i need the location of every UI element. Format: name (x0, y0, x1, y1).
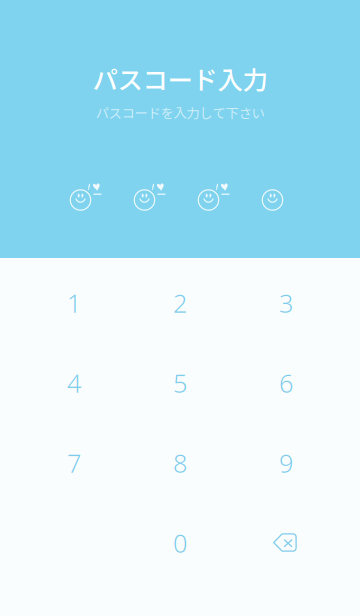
button[interactable]: 1 (21, 263, 127, 343)
button[interactable]: 3 (233, 263, 339, 343)
staticText: 1 (67, 286, 81, 320)
staticText: パスコードを入力して下さい (95, 103, 264, 122)
staticText: 2 (173, 286, 187, 320)
button[interactable]: 2 (127, 263, 233, 343)
staticText: パスコード入力 (92, 60, 267, 97)
staticText: 8 (173, 446, 187, 480)
staticText: 9 (279, 446, 293, 480)
staticText: 5 (173, 366, 187, 400)
staticText: 4 (67, 366, 81, 400)
staticText: 7 (67, 446, 81, 480)
button[interactable]: 4 (21, 343, 127, 423)
staticText: 3 (279, 286, 293, 320)
staticText: 0 (173, 526, 187, 560)
button[interactable]: 5 (127, 343, 233, 423)
button[interactable]: 7 (21, 423, 127, 503)
button[interactable]: 9 (233, 423, 339, 503)
button[interactable]: 6 (233, 343, 339, 423)
staticText: 6 (279, 366, 293, 400)
button[interactable]: 0 (127, 503, 233, 583)
button[interactable]: 8 (127, 423, 233, 503)
button[interactable]: Delete (233, 503, 339, 583)
